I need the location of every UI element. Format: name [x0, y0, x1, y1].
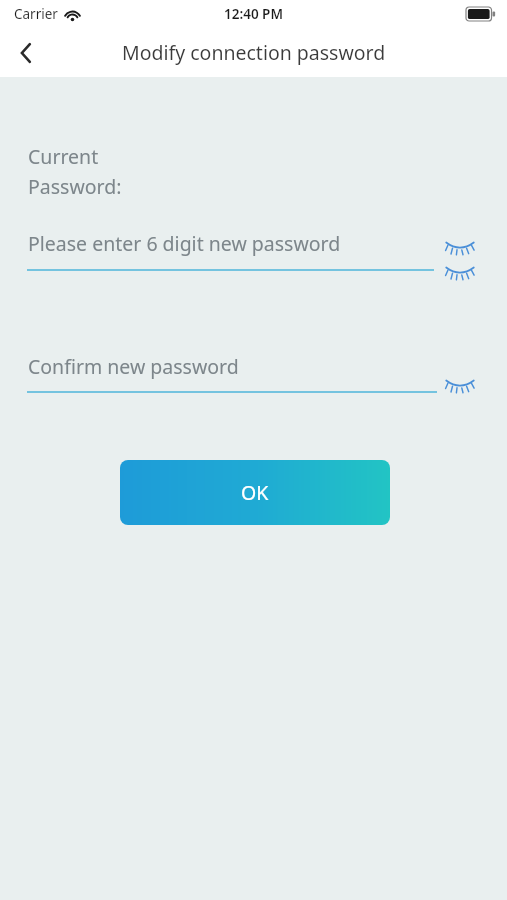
button[interactable]: Show new password: [436, 252, 484, 290]
button[interactable]: Show confirm password: [436, 365, 484, 403]
staticText: Modify connection password: [122, 39, 386, 66]
staticText: 12:40 PM: [224, 5, 283, 23]
button[interactable]: Back: [0, 28, 52, 77]
staticText: Please enter 6 digit new password: [28, 230, 341, 257]
staticText: Current: [28, 143, 99, 170]
staticText: Carrier: [14, 5, 58, 23]
staticText: Password:: [28, 173, 122, 200]
button[interactable]: Show current password: [436, 227, 484, 265]
button[interactable]: OK: [120, 460, 390, 525]
staticText: OK: [241, 479, 269, 506]
staticText: Confirm new password: [28, 353, 239, 380]
